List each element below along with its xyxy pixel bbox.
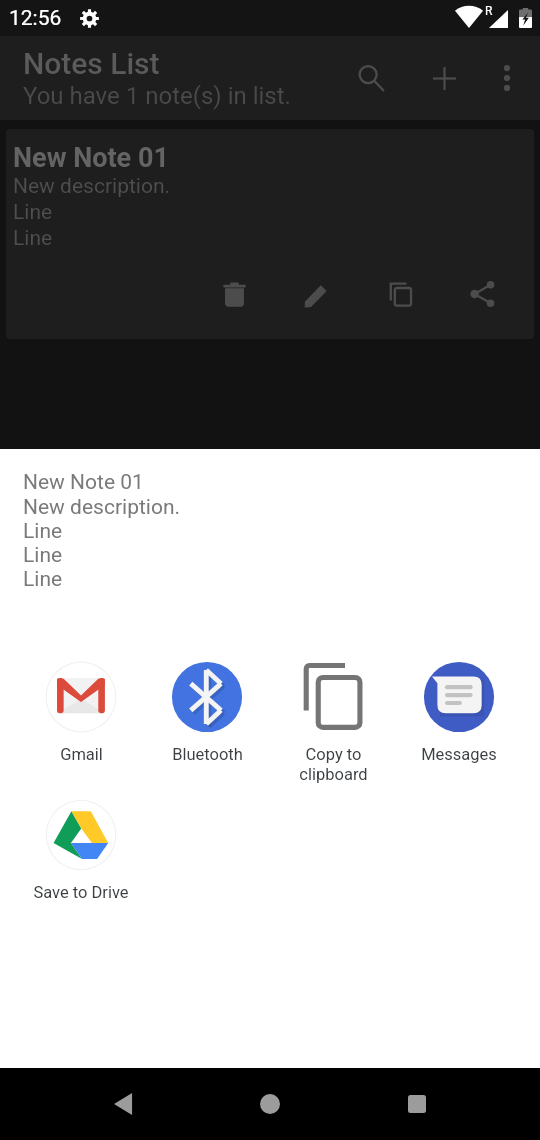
staticText: Gmail xyxy=(60,745,103,764)
button[interactable]: Save to Drive xyxy=(18,799,144,902)
button[interactable]: Copy to clipboard xyxy=(270,661,396,784)
staticText: New Note 01 New description. Line Line L… xyxy=(23,470,181,591)
staticText: Save to Drive xyxy=(33,883,129,902)
staticText: Copy to clipboard xyxy=(299,745,368,784)
staticText: New description. Line Line xyxy=(13,174,171,250)
button[interactable]: Search xyxy=(345,52,397,104)
staticText: 12:56 xyxy=(9,6,62,31)
button[interactable]: Delete xyxy=(214,274,254,314)
button[interactable]: Bluetooth xyxy=(144,661,270,764)
staticText: R xyxy=(485,4,493,18)
button[interactable]: Add note xyxy=(418,52,470,104)
staticText: You have 1 note(s) in list. xyxy=(23,82,291,110)
button[interactable]: More options xyxy=(481,52,533,104)
button[interactable]: Edit xyxy=(297,274,337,314)
button[interactable]: Home xyxy=(246,1080,294,1128)
button[interactable]: Recents xyxy=(393,1080,441,1128)
staticText: Notes List xyxy=(23,46,160,81)
button[interactable]: Share xyxy=(463,274,503,314)
button[interactable]: Messages xyxy=(396,661,522,764)
button[interactable]: Copy xyxy=(380,274,420,314)
button[interactable]: Back xyxy=(99,1080,147,1128)
button[interactable]: New Note 01 xyxy=(6,129,534,339)
staticText: New Note 01 xyxy=(13,142,169,174)
staticText: Bluetooth xyxy=(172,745,243,764)
staticText: Messages xyxy=(421,745,497,764)
button[interactable]: Gmail xyxy=(18,661,144,764)
